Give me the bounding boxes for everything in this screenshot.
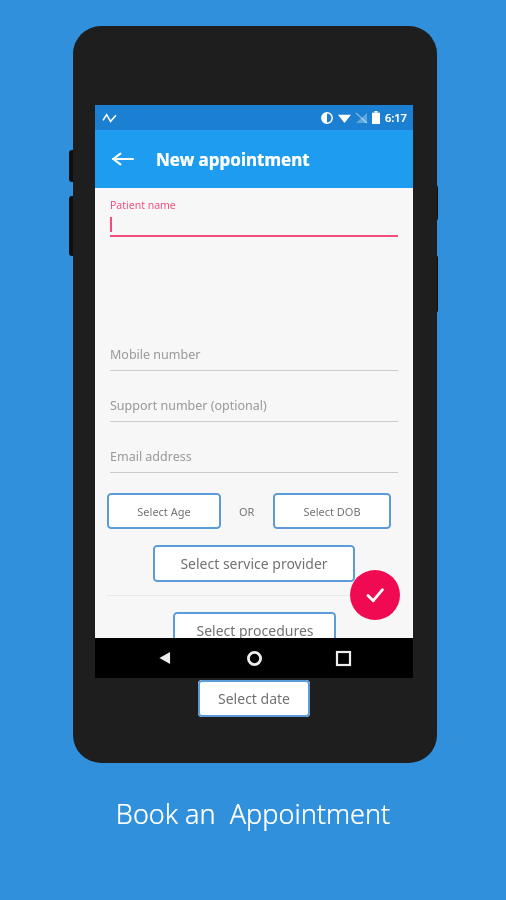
button[interactable]: Select service provider <box>153 545 355 582</box>
staticText: Select service provider <box>180 554 328 573</box>
button[interactable]: Select procedures <box>173 612 336 649</box>
staticText: Select procedures <box>196 621 314 640</box>
button[interactable]: Home <box>235 639 273 677</box>
button[interactable]: Back <box>146 639 184 677</box>
staticText: Select DOB <box>303 504 361 519</box>
staticText: Book an Appointment <box>0 795 506 832</box>
button[interactable]: Select date <box>198 680 310 717</box>
button[interactable]: Select Age <box>107 493 221 529</box>
staticText: Select Age <box>137 504 191 519</box>
staticText: Support number (optional) <box>110 397 267 414</box>
staticText: Email address <box>110 448 192 465</box>
staticText: Select date <box>218 689 290 708</box>
staticText: Mobile number <box>110 346 201 363</box>
button[interactable]: Recent apps <box>324 639 362 677</box>
staticText: Patient name <box>110 198 176 212</box>
staticText: OR <box>239 504 255 519</box>
button[interactable]: Back <box>103 140 141 178</box>
button[interactable]: Select DOB <box>273 493 391 529</box>
staticText: New appointment <box>156 148 310 171</box>
button[interactable]: Confirm <box>350 570 400 620</box>
staticText: 6:17 <box>385 110 407 125</box>
